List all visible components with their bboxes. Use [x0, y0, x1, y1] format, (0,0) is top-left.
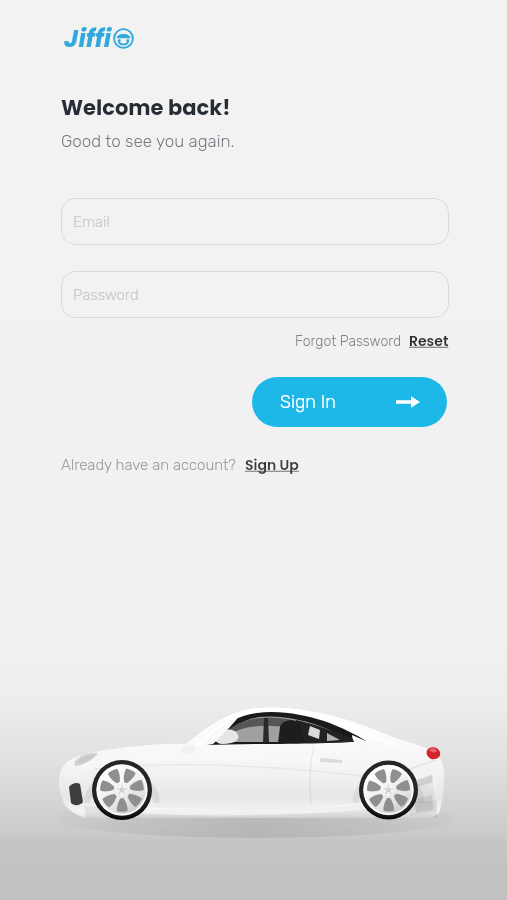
staticText: Already have an account? — [61, 456, 236, 474]
button[interactable]: Email — [61, 198, 449, 245]
other: Jiffi logo — [113, 28, 134, 49]
button[interactable]: Reset — [409, 331, 449, 351]
staticText: Sign In — [280, 391, 336, 412]
staticText: Good to see you again. — [61, 131, 235, 151]
staticText: Sign Up — [245, 455, 299, 475]
button[interactable]: Password — [61, 271, 449, 318]
button[interactable]: Sign Up — [245, 455, 299, 475]
button[interactable]: Sign In — [252, 377, 447, 427]
staticText: Welcome back! — [61, 93, 231, 122]
staticText: Email — [73, 213, 110, 231]
staticText: Password — [73, 286, 139, 304]
staticText: Reset — [409, 331, 449, 351]
staticText: Jiffi — [64, 21, 112, 56]
staticText: Forgot Password — [295, 333, 402, 350]
button[interactable]: Jiffi — [64, 21, 134, 56]
